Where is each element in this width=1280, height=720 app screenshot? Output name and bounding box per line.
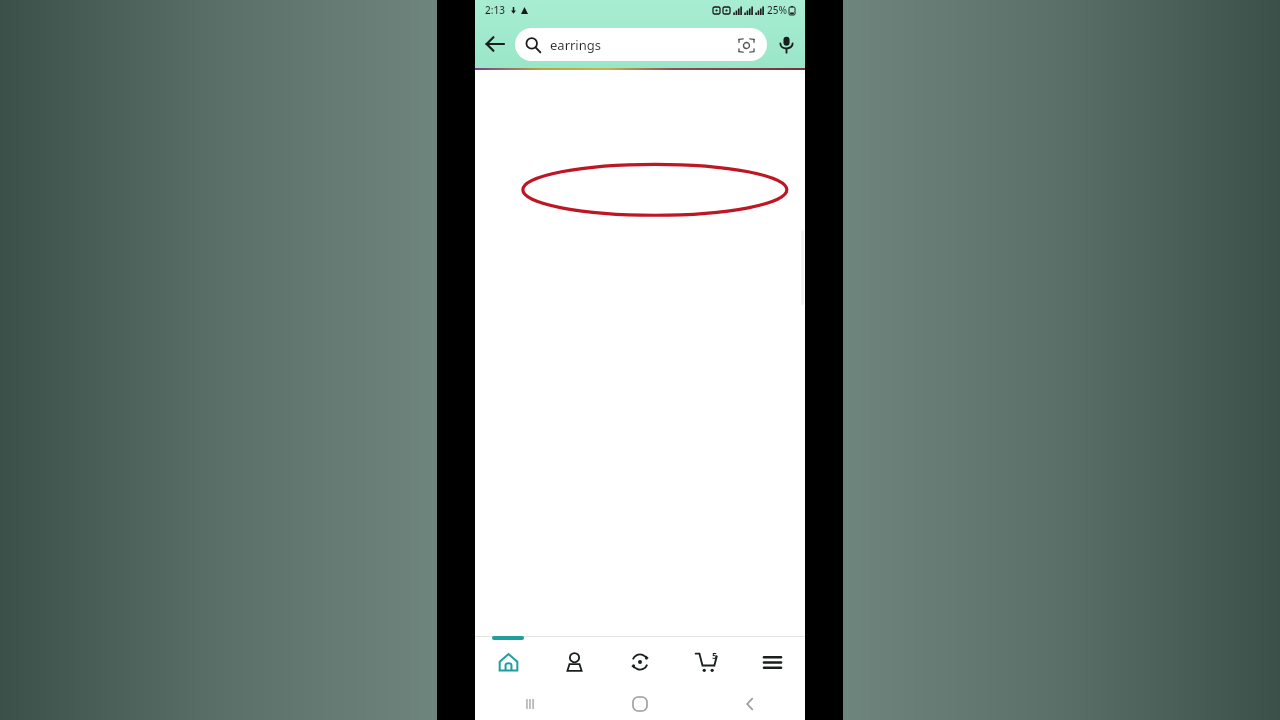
staticText: 2:13 [485,3,505,17]
button[interactable]: earrings [515,28,767,61]
button[interactable]: Recents [475,688,585,720]
button[interactable]: Refresh [607,636,673,688]
staticText: earrings [550,36,601,54]
button[interactable]: Back [475,24,515,64]
button[interactable]: Menu [739,636,805,688]
button[interactable]: Cart, 5 items [673,636,739,688]
button[interactable]: Voice search [767,25,805,63]
staticText: 25% [767,3,787,17]
button[interactable]: Home [475,636,541,688]
button[interactable]: Home [585,688,695,720]
button[interactable]: Account [541,636,607,688]
button[interactable]: Search with camera [735,34,757,56]
staticText: 5 [712,649,718,661]
button[interactable]: Back [695,688,805,720]
